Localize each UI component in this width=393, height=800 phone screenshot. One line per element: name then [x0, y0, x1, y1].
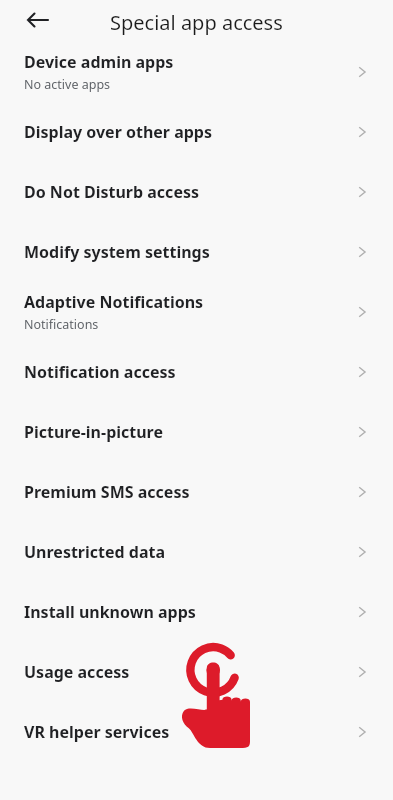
button[interactable]: Install unknown apps: [0, 582, 393, 642]
button[interactable]: Device admin apps: [0, 42, 393, 102]
staticText: Special app access: [110, 9, 283, 36]
staticText: Picture-in-picture: [24, 421, 164, 443]
staticText: Unrestricted data: [24, 541, 166, 563]
staticText: Adaptive Notifications: [24, 291, 204, 313]
staticText: Display over other apps: [24, 121, 213, 143]
staticText: Modify system settings: [24, 241, 210, 263]
staticText: Install unknown apps: [24, 601, 196, 623]
button[interactable]: Back: [14, 3, 62, 45]
staticText: Notifications: [24, 316, 99, 333]
button[interactable]: VR helper services: [0, 702, 393, 762]
button[interactable]: Display over other apps: [0, 102, 393, 162]
staticText: No active apps: [24, 76, 111, 93]
staticText: Usage access: [24, 661, 130, 683]
button[interactable]: Usage access: [0, 642, 393, 702]
button[interactable]: Notification access: [0, 342, 393, 402]
staticText: Do Not Disturb access: [24, 181, 199, 203]
button[interactable]: Unrestricted data: [0, 522, 393, 582]
button[interactable]: Premium SMS access: [0, 462, 393, 522]
staticText: Device admin apps: [24, 51, 174, 73]
staticText: Notification access: [24, 361, 176, 383]
staticText: VR helper services: [24, 721, 170, 743]
button[interactable]: Do Not Disturb access: [0, 162, 393, 222]
staticText: Premium SMS access: [24, 481, 190, 503]
button[interactable]: Adaptive Notifications: [0, 282, 393, 342]
button[interactable]: Picture-in-picture: [0, 402, 393, 462]
button[interactable]: Modify system settings: [0, 222, 393, 282]
